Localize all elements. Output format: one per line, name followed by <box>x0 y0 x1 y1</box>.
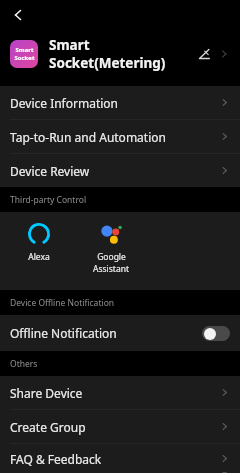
staticText: Tap-to-Run and Automation <box>10 129 219 145</box>
staticText: Socket <box>14 54 35 62</box>
button[interactable]: Device Information <box>0 86 240 119</box>
other: Google Assistant <box>99 222 123 246</box>
button[interactable]: Device Review <box>0 154 240 187</box>
staticText: Assistant <box>93 263 129 275</box>
button[interactable]: Edit device name <box>192 42 216 66</box>
staticText: Device Offline Notification <box>10 297 115 309</box>
button[interactable]: Share Device <box>0 376 240 409</box>
button[interactable]: Alexa <box>10 220 68 263</box>
staticText: FAQ & Feedback <box>10 451 219 467</box>
staticText: Device Review <box>10 163 219 179</box>
button[interactable]: Offline Notification <box>0 315 240 351</box>
staticText: Others <box>10 358 38 370</box>
staticText: Smart <box>15 46 34 54</box>
staticText: Smart Socket(Metering) <box>49 36 192 72</box>
staticText: Google <box>97 251 126 263</box>
staticText: Create Group <box>10 419 219 435</box>
button[interactable]: Smart <box>0 30 240 78</box>
button[interactable]: Back <box>4 1 32 29</box>
staticText: Share Device <box>10 385 219 401</box>
button[interactable]: Google Assistant <box>82 220 140 275</box>
button[interactable]: Tap-to-Run and Automation <box>0 120 240 153</box>
staticText: Offline Notification <box>10 325 202 341</box>
staticText: Alexa <box>28 251 50 263</box>
staticText: Third-party Control <box>10 194 87 206</box>
button[interactable]: FAQ & Feedback <box>0 444 240 473</box>
staticText: Device Information <box>10 95 219 111</box>
other: Alexa <box>27 222 51 246</box>
button[interactable]: Create Group <box>0 410 240 443</box>
